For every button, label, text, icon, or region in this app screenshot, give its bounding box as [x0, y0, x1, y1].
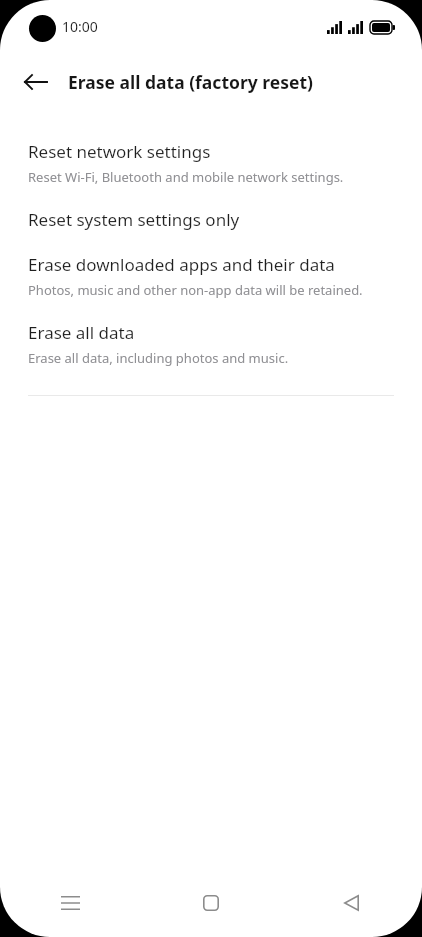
staticText: Reset Wi-Fi, Bluetooth and mobile networ… — [28, 168, 344, 186]
staticText: Erase all data, including photos and mus… — [28, 349, 289, 367]
staticText: Erase downloaded apps and their data — [28, 253, 335, 276]
staticText: Photos, music and other non-app data wil… — [28, 281, 363, 299]
button[interactable]: Erase all data — [0, 310, 422, 378]
button[interactable]: Back — [281, 869, 422, 937]
button[interactable]: Erase downloaded apps and their data — [0, 242, 422, 310]
button[interactable]: Recent apps — [0, 869, 140, 937]
staticText: Reset network settings — [28, 140, 211, 163]
button[interactable]: Back — [13, 59, 59, 105]
staticText: Reset system settings only — [28, 208, 240, 231]
button[interactable]: Reset network settings — [0, 129, 422, 197]
staticText: 10:00 — [62, 17, 98, 36]
button[interactable]: Home — [140, 869, 281, 937]
staticText: Erase all data — [28, 321, 135, 344]
staticText: Erase all data (factory reset) — [68, 70, 313, 94]
button[interactable]: Reset system settings only — [0, 197, 422, 242]
